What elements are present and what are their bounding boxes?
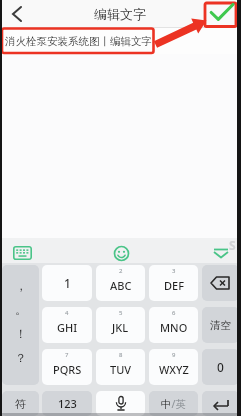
staticText: 0 [217, 359, 224, 375]
button[interactable]: 7 [42, 349, 92, 385]
button[interactable]: 2 [96, 265, 145, 301]
staticText: ？ [15, 350, 27, 365]
button[interactable] [96, 391, 145, 416]
staticText: 。 [15, 302, 27, 317]
staticText: 9 [172, 351, 176, 359]
button[interactable]: 1 [42, 265, 92, 301]
button[interactable]: 符 [2, 391, 39, 416]
staticText: 7 [65, 351, 69, 359]
button[interactable]: 4 [42, 307, 92, 343]
button[interactable]: 123 [42, 391, 92, 416]
staticText: PQRS [53, 362, 82, 377]
staticText: 123 [58, 396, 77, 411]
staticText: WXYZ [159, 362, 189, 377]
staticText: TUV [110, 362, 132, 377]
staticText: 消火栓泵安装系统图丨编辑文字 [5, 35, 152, 48]
staticText: 3 [172, 267, 176, 275]
staticText: 符 [15, 397, 26, 411]
staticText: 清空 [210, 319, 231, 332]
button[interactable] [202, 265, 239, 301]
button[interactable]: 消火栓泵安装系统图丨编辑文字 [0, 28, 241, 54]
staticText: 2 [119, 267, 123, 275]
staticText: S [229, 237, 236, 253]
button[interactable]: 3 [149, 265, 198, 301]
button[interactable]: ， [2, 265, 39, 385]
button[interactable]: 9 [149, 349, 198, 385]
button[interactable] [13, 246, 32, 260]
staticText: DEF [164, 278, 184, 293]
button[interactable]: 清空 [202, 307, 239, 343]
button[interactable]: 中/英 [149, 391, 198, 416]
staticText: 4 [65, 309, 69, 317]
staticText: 6 [172, 309, 176, 317]
staticText: 5 [119, 309, 123, 317]
staticText: 8 [119, 351, 123, 359]
button[interactable] [8, 4, 28, 24]
staticText: ABC [110, 278, 132, 293]
button[interactable]: 6 [149, 307, 198, 343]
button[interactable] [202, 391, 239, 416]
button[interactable] [113, 245, 130, 262]
button[interactable] [211, 245, 231, 261]
staticText: GHI [57, 320, 78, 335]
staticText: JKL [112, 320, 129, 335]
staticText: MNO [160, 320, 188, 335]
staticText: ！ [15, 326, 27, 341]
button[interactable]: 0 [202, 349, 239, 385]
staticText: 编辑文字 [94, 6, 146, 22]
button[interactable]: 5 [96, 307, 145, 343]
button[interactable]: 8 [96, 349, 145, 385]
staticText: 中/英 [161, 397, 186, 411]
staticText: 1 [64, 275, 71, 291]
staticText: ， [15, 278, 27, 293]
